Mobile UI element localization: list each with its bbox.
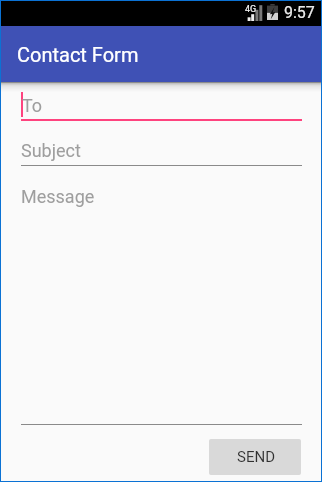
button[interactable]: Subject bbox=[1, 140, 321, 167]
other: Mobile signal 4G, two bars bbox=[247, 5, 263, 21]
staticText: To bbox=[22, 95, 43, 116]
staticText: Contact Form bbox=[17, 43, 139, 66]
button[interactable]: To bbox=[1, 88, 321, 122]
staticText: Subject bbox=[21, 140, 81, 161]
staticText: Message bbox=[21, 186, 95, 207]
button[interactable]: SEND bbox=[209, 439, 301, 475]
other: Battery charging bbox=[267, 4, 278, 20]
button[interactable]: Message bbox=[1, 186, 321, 426]
staticText: 4G bbox=[245, 4, 257, 15]
staticText: SEND bbox=[237, 448, 275, 466]
staticText: 9:57 bbox=[284, 3, 315, 22]
button[interactable]: Contact Form bbox=[1, 26, 321, 82]
